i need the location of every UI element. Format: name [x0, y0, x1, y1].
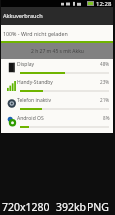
staticText: 8%: [103, 115, 110, 121]
staticText: 21%: [100, 97, 110, 103]
staticText: Android OS: [17, 115, 44, 122]
button[interactable]: Android OS: [1, 113, 113, 131]
button[interactable]: Akkuverbrauch: [1, 7, 113, 25]
button[interactable]: Display: [1, 59, 113, 77]
button[interactable]: Handy-Standby: [1, 77, 113, 95]
staticText: 23%: [100, 79, 110, 85]
staticText: 720x1280: [2, 200, 50, 214]
button[interactable]: Telefon inaktiv: [1, 95, 113, 113]
staticText: Handy-Standby: [17, 79, 53, 86]
staticText: 48%: [100, 61, 110, 67]
staticText: 12:28: [96, 0, 112, 7]
staticText: Display: [17, 61, 35, 68]
staticText: 2 h 27 m 45 s mit Akku: [31, 48, 84, 55]
staticText: Telefon inaktiv: [17, 97, 51, 104]
staticText: Akkuverbrauch: [3, 12, 43, 20]
staticText: 392kb: [56, 200, 87, 214]
staticText: 100% - Wird nicht geladen: [3, 30, 68, 37]
staticText: PNG: [87, 200, 109, 214]
